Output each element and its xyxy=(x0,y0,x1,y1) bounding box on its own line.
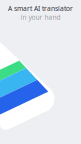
staticText: A smart AI translator xyxy=(8,4,73,13)
staticText: in your hand xyxy=(20,13,60,22)
